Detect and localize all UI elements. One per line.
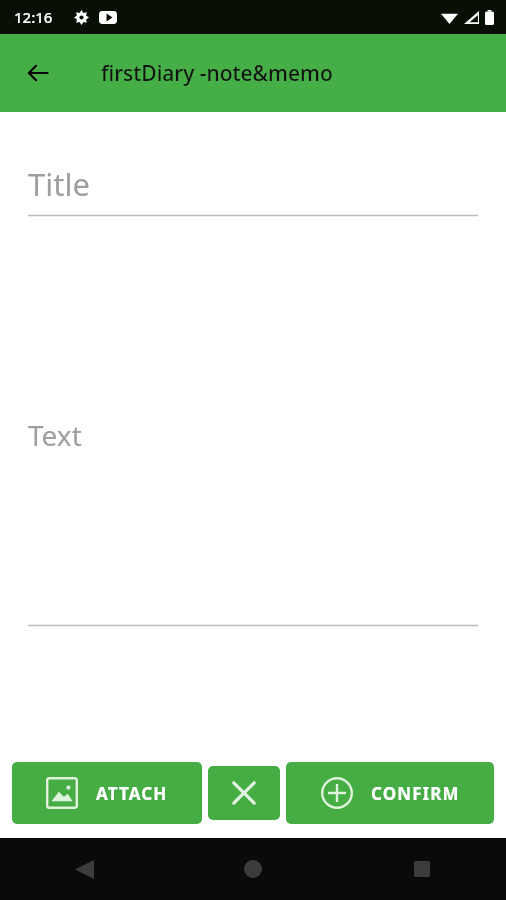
button[interactable]: Clear xyxy=(208,766,280,820)
staticText: firstDiary -note&memo xyxy=(101,59,333,88)
button[interactable]: Recent apps xyxy=(398,845,446,893)
staticText: Text xyxy=(28,416,82,454)
staticText: CONFIRM xyxy=(371,782,460,805)
button[interactable]: Title xyxy=(28,152,478,216)
button[interactable]: Back xyxy=(14,49,62,97)
staticText: Title xyxy=(28,163,90,205)
staticText: 12:16 xyxy=(14,7,53,27)
button[interactable]: Text xyxy=(28,406,478,626)
button[interactable]: CONFIRM xyxy=(286,762,494,824)
staticText: ATTACH xyxy=(96,782,168,805)
button[interactable]: Back xyxy=(60,845,108,893)
button[interactable]: Home xyxy=(229,845,277,893)
button[interactable]: ATTACH xyxy=(12,762,202,824)
